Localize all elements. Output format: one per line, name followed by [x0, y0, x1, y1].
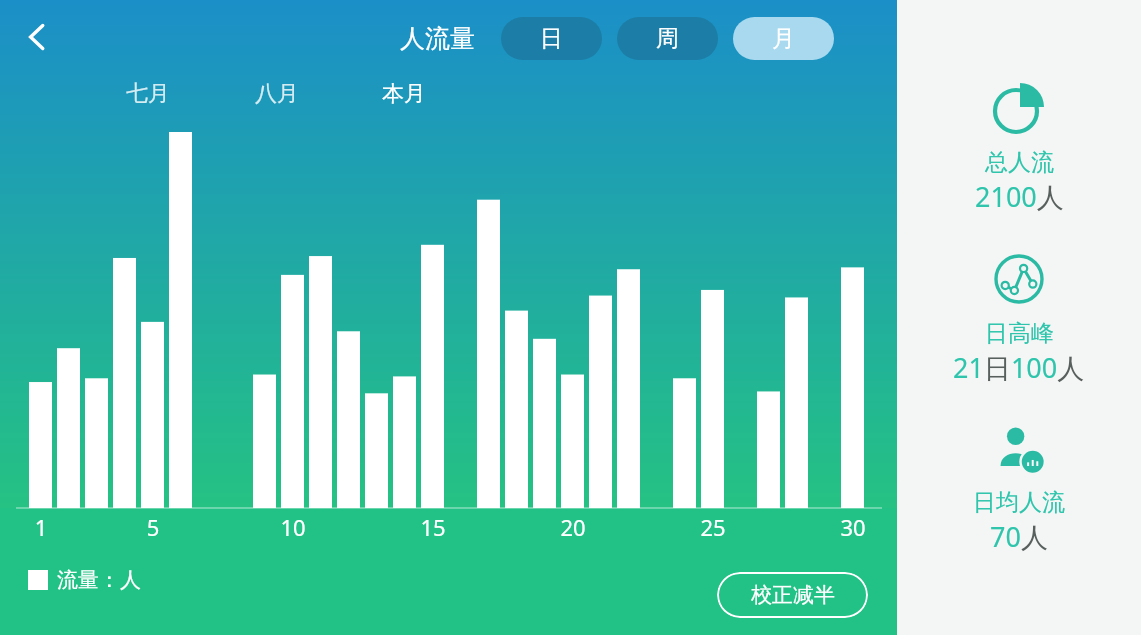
- staticText: 10: [277, 512, 309, 542]
- staticText: 70人: [990, 518, 1048, 555]
- other: Daily peak: [991, 251, 1047, 307]
- button[interactable]: Average daily visitors: [897, 420, 1141, 555]
- staticText: 本月: [382, 80, 426, 108]
- staticText: 5: [137, 512, 169, 542]
- button[interactable]: Total visitors: [897, 78, 1141, 215]
- button[interactable]: 周: [617, 17, 718, 60]
- staticText: 25: [697, 512, 729, 542]
- staticText: 2100人: [975, 178, 1064, 215]
- staticText: 日高峰: [985, 319, 1054, 348]
- button[interactable]: 日: [501, 17, 602, 60]
- staticText: 八月: [255, 80, 299, 108]
- staticText: 周: [656, 24, 679, 53]
- button[interactable]: Back: [8, 8, 66, 66]
- staticText: 1: [25, 512, 57, 542]
- button[interactable]: 校正减半: [717, 572, 868, 618]
- staticText: 人流量: [400, 23, 475, 54]
- staticText: 日: [540, 24, 563, 53]
- staticText: 校正减半: [751, 582, 835, 608]
- staticText: 日均人流: [973, 488, 1065, 517]
- other: Average daily visitors: [991, 420, 1047, 476]
- staticText: 30: [837, 512, 869, 542]
- staticText: 15: [417, 512, 449, 542]
- button[interactable]: Daily peak: [897, 251, 1141, 386]
- staticText: 总人流: [985, 148, 1054, 177]
- staticText: 流量：人: [57, 567, 141, 593]
- other: Total visitors: [990, 78, 1048, 136]
- staticText: 21日100人: [953, 349, 1085, 386]
- staticText: 月: [772, 24, 795, 53]
- staticText: 20: [557, 512, 589, 542]
- staticText: 七月: [126, 80, 170, 108]
- button[interactable]: 月: [733, 17, 834, 60]
